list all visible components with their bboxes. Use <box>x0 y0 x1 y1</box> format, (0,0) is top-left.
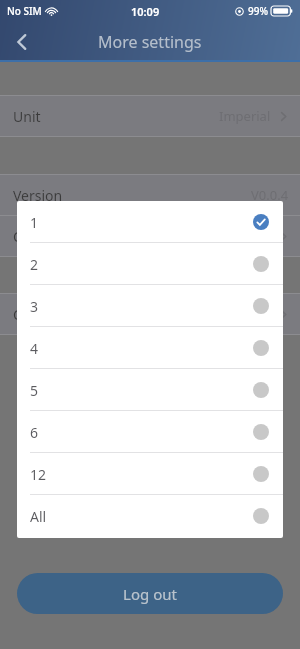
staticText: Unit <box>13 107 41 126</box>
button[interactable]: All <box>17 495 283 537</box>
staticText: V0.0.4 <box>251 186 289 204</box>
button[interactable]: 4 <box>17 327 283 369</box>
button[interactable]: 6 <box>17 411 283 453</box>
button[interactable]: Log out <box>17 573 283 614</box>
staticText: Imperial <box>219 107 271 125</box>
staticText: All <box>30 507 47 526</box>
button[interactable]: Version <box>0 175 300 215</box>
staticText: 10:09 <box>131 4 160 19</box>
staticText: 6 <box>30 423 39 442</box>
staticText: No SIM <box>7 4 42 18</box>
button[interactable]: C <box>0 216 300 256</box>
staticText: C <box>13 305 22 324</box>
button[interactable]: C <box>0 294 300 334</box>
staticText: 3 <box>30 297 39 316</box>
button[interactable]: 5 <box>17 369 283 411</box>
staticText: Version <box>13 186 63 205</box>
staticText: 1 <box>30 213 39 232</box>
staticText: C <box>13 227 22 246</box>
staticText: 5 <box>30 381 39 400</box>
button[interactable]: Unit <box>0 96 300 136</box>
button[interactable]: 2 <box>17 243 283 285</box>
staticText: More settings <box>98 31 202 53</box>
staticText: Log out <box>123 584 177 604</box>
staticText: 4 <box>30 339 39 358</box>
button[interactable]: 3 <box>17 285 283 327</box>
staticText: 2 <box>30 255 39 274</box>
staticText: 99% <box>248 4 268 18</box>
button[interactable]: 1 <box>17 201 283 243</box>
button[interactable]: 12 <box>17 453 283 495</box>
staticText: 12 <box>30 465 47 484</box>
button[interactable]: Back <box>0 22 44 62</box>
